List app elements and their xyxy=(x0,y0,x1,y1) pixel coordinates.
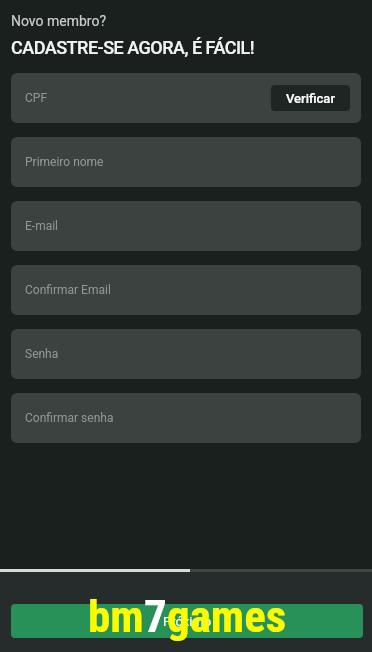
button[interactable]: E-mail xyxy=(11,201,361,251)
button[interactable]: Senha xyxy=(11,329,361,379)
staticText: bm xyxy=(88,590,144,643)
staticText: Confirmar senha xyxy=(25,411,114,425)
staticText: Senha xyxy=(25,347,59,361)
staticText: Novo membro? xyxy=(11,13,107,29)
button[interactable]: Confirmar senha xyxy=(11,393,361,443)
button[interactable]: Confirmar Email xyxy=(11,265,361,315)
staticText: CADASTRE-SE AGORA, É FÁCIL! xyxy=(11,37,255,58)
staticText: E-mail xyxy=(25,219,59,233)
staticText: 7 xyxy=(144,590,167,643)
button[interactable]: CPF xyxy=(11,73,361,123)
staticText: Primeiro nome xyxy=(25,155,104,169)
button[interactable]: Verificar xyxy=(271,85,350,111)
staticText: CPF xyxy=(25,91,48,105)
staticText: Confirmar Email xyxy=(25,283,111,297)
staticText: Próximo xyxy=(163,614,212,629)
staticText: Verificar xyxy=(286,91,335,106)
staticText: games xyxy=(167,590,287,643)
button[interactable]: Primeiro nome xyxy=(11,137,361,187)
button[interactable]: Próximo xyxy=(11,604,363,638)
